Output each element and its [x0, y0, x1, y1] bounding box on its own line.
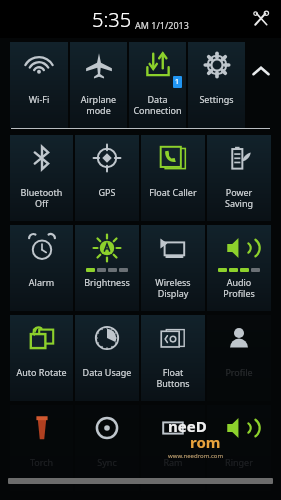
button[interactable]: Airplane mode	[70, 42, 127, 128]
button[interactable]: Data Usage	[75, 315, 139, 401]
staticText: Brightness	[75, 276, 139, 288]
button[interactable]: GPS	[75, 135, 139, 221]
button[interactable]: Collapse	[245, 56, 277, 88]
button[interactable]: Alarm	[10, 225, 73, 311]
button[interactable]: Wireless Display	[141, 225, 205, 311]
staticText: Data Usage	[75, 366, 139, 378]
staticText: Ram	[141, 456, 205, 468]
button[interactable]: Torch	[10, 405, 73, 491]
staticText: Power Saving	[207, 186, 271, 209]
button[interactable]: Brightness	[75, 225, 139, 311]
button[interactable]: Settings tools	[247, 5, 275, 33]
button[interactable]: Power Saving	[207, 135, 271, 221]
button[interactable]: 1	[129, 42, 186, 128]
button[interactable]: Sync	[75, 405, 139, 491]
staticText: www.needrom.com	[168, 452, 224, 460]
staticText: GPS	[75, 186, 139, 198]
staticText: 1	[175, 77, 180, 87]
staticText: Settings	[188, 93, 245, 105]
button[interactable]: Profile	[207, 315, 271, 401]
staticText: Float Caller	[141, 186, 205, 198]
staticText: Float Buttons	[141, 366, 205, 389]
button[interactable]: Float Caller	[141, 135, 205, 221]
staticText: rom	[190, 432, 221, 452]
staticText: Data Connection	[129, 93, 186, 116]
staticText: Airplane mode	[70, 93, 127, 116]
staticText: Alarm	[10, 276, 73, 288]
staticText: Ringer	[207, 456, 271, 468]
staticText: Auto Rotate	[10, 366, 73, 378]
button[interactable]: Settings	[188, 42, 245, 128]
button[interactable]: Wi-Fi	[10, 42, 68, 128]
staticText: Torch	[10, 456, 73, 468]
button[interactable]: Audio Profiles	[207, 225, 271, 311]
staticText: 5:35	[92, 6, 132, 33]
staticText: Audio Profiles	[207, 276, 271, 299]
button[interactable]: Bluetooth Off	[10, 135, 73, 221]
staticText: Sync	[75, 456, 139, 468]
staticText: Bluetooth Off	[10, 186, 73, 209]
button[interactable]: Auto Rotate	[10, 315, 73, 401]
staticText: Profile	[207, 366, 271, 378]
button[interactable]: Float Buttons	[141, 315, 205, 401]
button[interactable]: Ringer	[207, 405, 271, 491]
button[interactable]: Ram	[141, 405, 205, 491]
staticText: Wi-Fi	[10, 93, 68, 105]
staticText: neeD	[168, 416, 207, 436]
staticText: Wireless Display	[141, 276, 205, 299]
staticText: AM 1/1/2013	[135, 19, 189, 31]
